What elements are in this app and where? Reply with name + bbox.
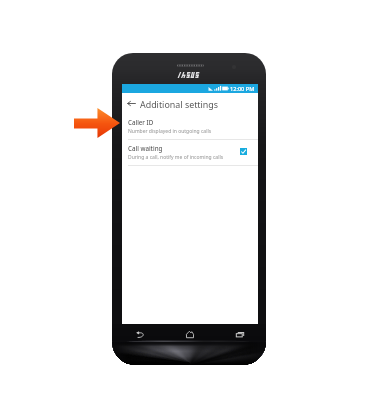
staticText: Additional settings bbox=[140, 98, 219, 110]
button[interactable]: Call waiting, enabled bbox=[237, 140, 250, 165]
button[interactable]: Recent apps bbox=[231, 326, 248, 343]
staticText: Number displayed in outgoing calls bbox=[128, 128, 212, 135]
staticText: During a call, notify me of incoming cal… bbox=[128, 154, 224, 161]
staticText: Caller ID bbox=[128, 118, 154, 126]
button[interactable]: Caller ID bbox=[122, 114, 258, 139]
button[interactable]: Home bbox=[181, 326, 198, 343]
staticText: 12:00 PM bbox=[230, 85, 255, 93]
button[interactable]: Call waiting bbox=[122, 140, 258, 165]
button[interactable]: Back bbox=[131, 326, 148, 343]
button[interactable]: Navigate up bbox=[122, 93, 140, 114]
staticText: Call waiting bbox=[128, 144, 163, 152]
